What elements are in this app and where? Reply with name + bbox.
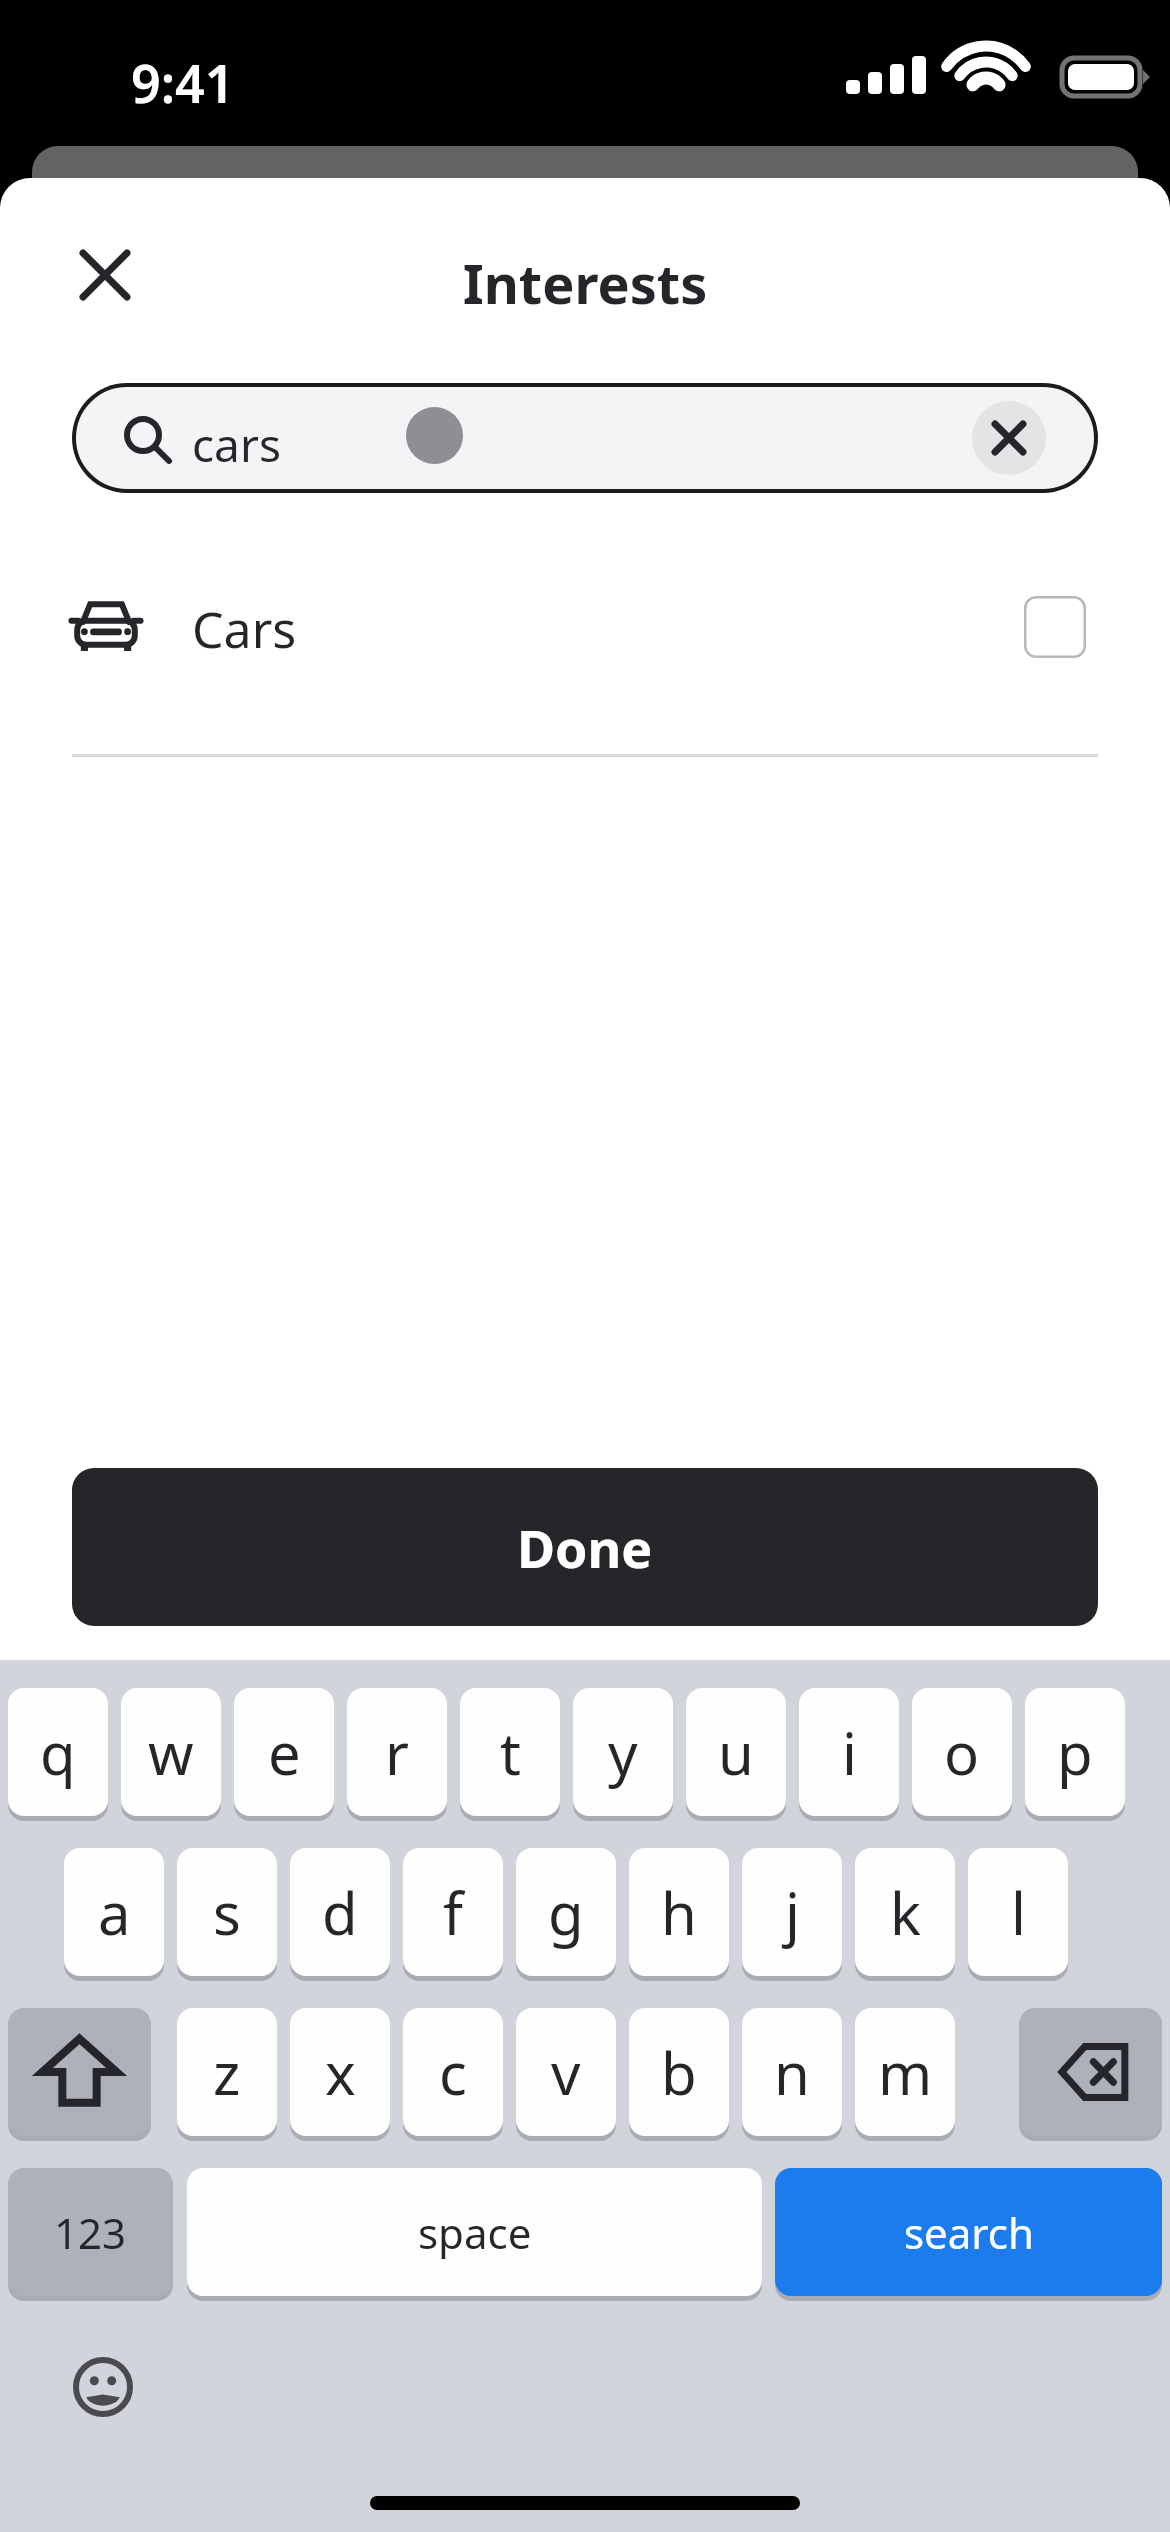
- button[interactable]: Backspace: [1019, 2008, 1162, 2136]
- staticText: o: [944, 1713, 980, 1792]
- staticText: cars: [192, 413, 281, 476]
- button[interactable]: h: [629, 1848, 729, 1976]
- button[interactable]: l: [968, 1848, 1068, 1976]
- button[interactable]: Select Cars: [1024, 596, 1086, 658]
- staticText: x: [325, 2033, 356, 2112]
- staticText: p: [1057, 1713, 1093, 1792]
- button[interactable]: w: [121, 1688, 221, 1816]
- button[interactable]: Emoji: [48, 2332, 158, 2442]
- button[interactable]: p: [1025, 1688, 1125, 1816]
- button[interactable]: e: [234, 1688, 334, 1816]
- button[interactable]: u: [686, 1688, 786, 1816]
- button[interactable]: n: [742, 2008, 842, 2136]
- staticText: e: [268, 1713, 301, 1792]
- staticText: h: [661, 1873, 697, 1952]
- staticText: space: [418, 2204, 532, 2261]
- button[interactable]: z: [177, 2008, 277, 2136]
- button[interactable]: search: [775, 2168, 1162, 2296]
- button[interactable]: Cars: [0, 558, 1170, 690]
- button[interactable]: Done: [72, 1468, 1098, 1626]
- button[interactable]: x: [290, 2008, 390, 2136]
- staticText: z: [213, 2033, 241, 2112]
- button[interactable]: d: [290, 1848, 390, 1976]
- staticText: u: [718, 1713, 754, 1792]
- button[interactable]: q: [8, 1688, 108, 1816]
- staticText: q: [40, 1713, 76, 1792]
- staticText: g: [548, 1873, 584, 1952]
- button[interactable]: k: [855, 1848, 955, 1976]
- staticText: search: [904, 2204, 1034, 2261]
- button[interactable]: 123: [8, 2168, 173, 2296]
- button[interactable]: c: [403, 2008, 503, 2136]
- staticText: f: [443, 1873, 463, 1952]
- button[interactable]: t: [460, 1688, 560, 1816]
- button[interactable]: o: [912, 1688, 1012, 1816]
- button[interactable]: r: [347, 1688, 447, 1816]
- button[interactable]: cars: [72, 383, 1098, 493]
- button[interactable]: i: [799, 1688, 899, 1816]
- button[interactable]: b: [629, 2008, 729, 2136]
- staticText: l: [1011, 1873, 1026, 1952]
- button[interactable]: Clear text: [972, 401, 1046, 475]
- staticText: k: [890, 1873, 921, 1952]
- staticText: b: [661, 2033, 697, 2112]
- button[interactable]: f: [403, 1848, 503, 1976]
- button[interactable]: Shift: [8, 2008, 151, 2136]
- button[interactable]: a: [64, 1848, 164, 1976]
- staticText: c: [439, 2033, 467, 2112]
- staticText: w: [148, 1713, 194, 1792]
- staticText: d: [322, 1873, 358, 1952]
- button[interactable]: j: [742, 1848, 842, 1976]
- button[interactable]: m: [855, 2008, 955, 2136]
- staticText: r: [385, 1713, 409, 1792]
- staticText: i: [842, 1713, 857, 1792]
- staticText: 9:41: [131, 47, 235, 118]
- staticText: Done: [517, 1512, 653, 1583]
- button[interactable]: v: [516, 2008, 616, 2136]
- staticText: y: [608, 1713, 638, 1792]
- staticText: m: [878, 2033, 933, 2112]
- button[interactable]: y: [573, 1688, 673, 1816]
- staticText: Cars: [192, 595, 297, 663]
- button[interactable]: space: [187, 2168, 762, 2296]
- staticText: 123: [54, 2204, 127, 2261]
- staticText: n: [774, 2033, 810, 2112]
- staticText: t: [500, 1713, 521, 1792]
- staticText: j: [785, 1873, 800, 1952]
- staticText: Interests: [0, 246, 1170, 320]
- staticText: s: [213, 1873, 241, 1952]
- button[interactable]: g: [516, 1848, 616, 1976]
- button[interactable]: Close: [53, 223, 157, 327]
- staticText: a: [98, 1873, 131, 1952]
- button[interactable]: s: [177, 1848, 277, 1976]
- staticText: v: [551, 2033, 581, 2112]
